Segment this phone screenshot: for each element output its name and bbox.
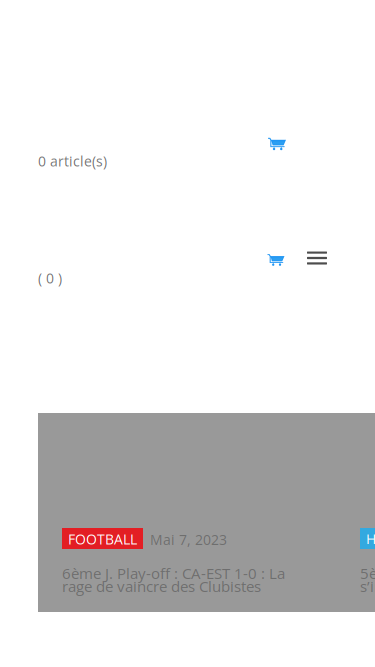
staticText: 6ème J. Play-off : CA-EST 1-0 : La — [62, 564, 285, 582]
staticText: ( 0 ) — [38, 269, 62, 287]
staticText: 5ème J. Play-off : L’Espérance — [360, 564, 375, 582]
staticText: Mai 7, 2023 — [150, 531, 227, 548]
button[interactable]: Panier — [260, 247, 292, 273]
button[interactable]: ( 0 ) — [38, 269, 62, 287]
staticText: rage de vaincre des Clubistes — [62, 577, 261, 595]
button[interactable]: Voir le panier — [260, 130, 294, 158]
staticText: 0 article(s) — [38, 152, 107, 170]
button[interactable]: 0 article(s) — [38, 152, 107, 170]
button[interactable]: FOOTBALL — [38, 413, 336, 612]
button[interactable]: HANDBALL — [336, 413, 375, 612]
staticText: HANDBALL — [366, 530, 375, 548]
staticText: s’impose devant le CA — [360, 577, 375, 595]
staticText: FOOTBALL — [68, 530, 137, 548]
button[interactable]: Menu — [302, 244, 332, 272]
